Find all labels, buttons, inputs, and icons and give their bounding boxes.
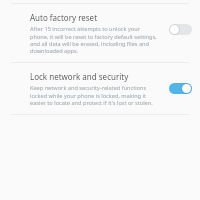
staticText: Auto factory reset [30,12,98,23]
staticText: Lock network and security [30,71,129,82]
staticText: Keep network and security-related functi… [30,84,158,106]
button[interactable]: Auto factory reset [0,7,200,60]
button[interactable]: Toggle lock network and security [164,78,196,98]
button[interactable]: Lock network and security [0,66,200,112]
staticText: After 15 incorrect attempts to unlock yo… [30,25,158,54]
button[interactable]: Toggle auto factory reset [164,19,196,39]
